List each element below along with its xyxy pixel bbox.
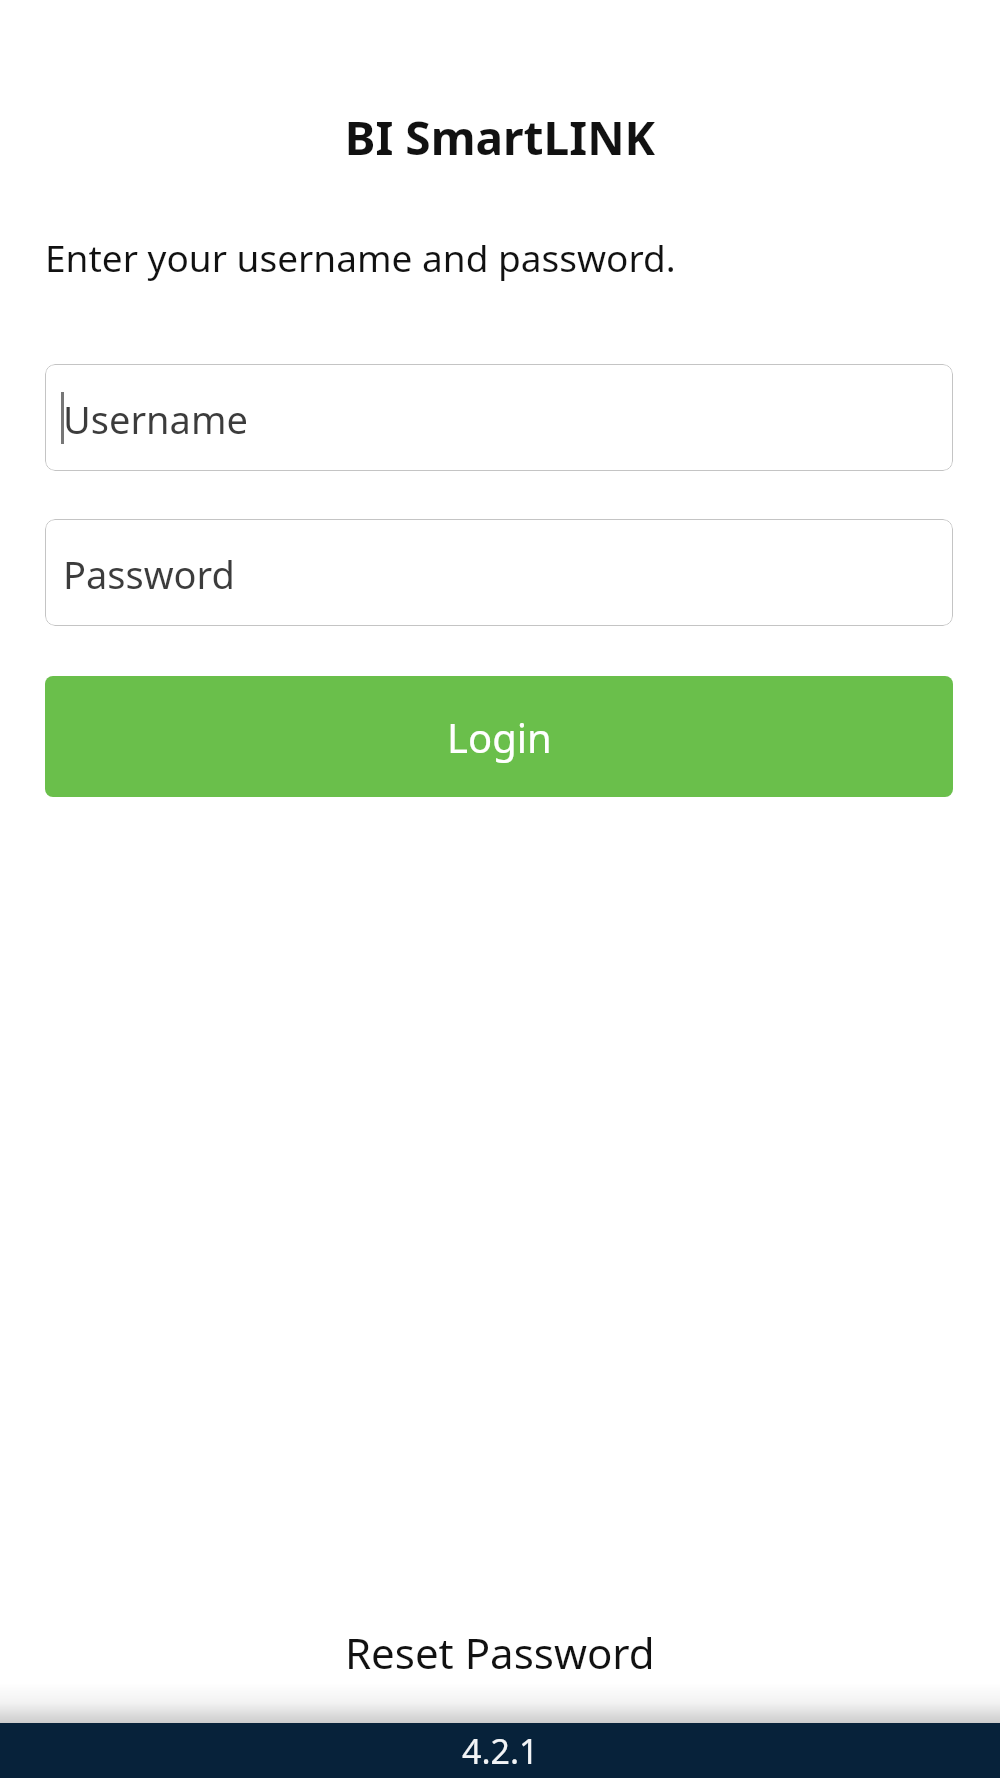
staticText: Password	[63, 548, 235, 600]
staticText: 4.2.1	[462, 1728, 539, 1774]
staticText: Login	[447, 710, 552, 764]
button[interactable]: Password	[45, 519, 953, 626]
button[interactable]: Username	[45, 364, 953, 471]
button[interactable]: Login	[45, 676, 953, 797]
staticText: Username	[63, 393, 248, 445]
staticText: Reset Password	[345, 1624, 655, 1681]
staticText: BI SmartLINK	[0, 106, 1000, 169]
staticText: Enter your username and password.	[45, 232, 676, 282]
button[interactable]: Reset Password	[321, 1616, 679, 1689]
